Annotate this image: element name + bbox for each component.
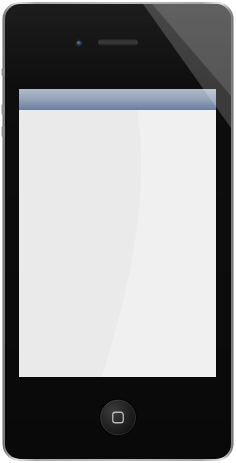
button[interactable]: App bar [19,89,216,110]
button[interactable]: Home [101,400,136,435]
